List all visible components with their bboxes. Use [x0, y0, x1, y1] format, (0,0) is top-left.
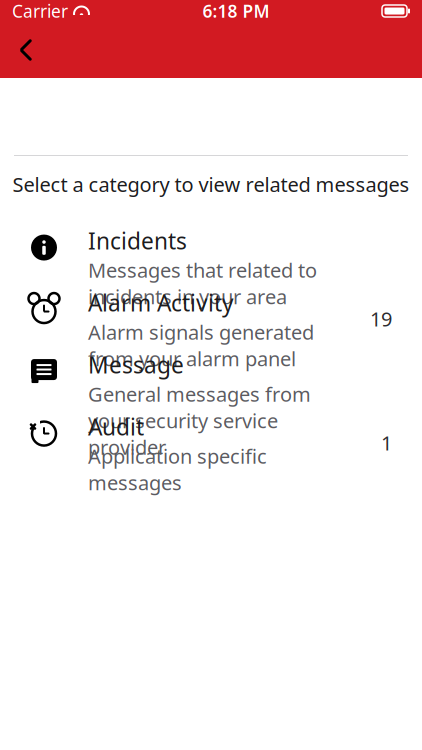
staticText: Incidents — [88, 226, 187, 256]
staticText: 19 — [370, 306, 392, 332]
staticText: Carrier — [12, 0, 68, 22]
button[interactable]: Back — [0, 25, 52, 75]
staticText: Select a category to view related messag… — [12, 171, 409, 198]
staticText: 6:18 PM — [202, 0, 269, 22]
staticText: Alarm signals generated from your alarm … — [88, 319, 314, 372]
button[interactable]: Audit — [0, 412, 422, 464]
staticText: Application specific messages — [88, 443, 267, 496]
staticText: General messages from your security serv… — [88, 381, 311, 460]
button[interactable]: Incidents — [0, 226, 422, 288]
staticText: 1 — [381, 430, 392, 456]
button[interactable]: Alarm Activity — [0, 288, 422, 350]
staticText: Audit — [88, 412, 144, 442]
button[interactable]: Message — [0, 350, 422, 412]
staticText: Messages that related to incidents in yo… — [88, 257, 317, 310]
staticText: Alarm Activity — [88, 288, 234, 318]
staticText: Message — [88, 350, 184, 380]
